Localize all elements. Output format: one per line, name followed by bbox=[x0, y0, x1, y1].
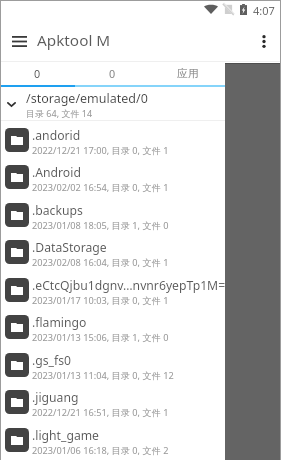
button[interactable]: Collapse folder bbox=[0, 87, 225, 121]
button[interactable]: .jiguang bbox=[0, 383, 231, 421]
staticText: 2023/01/08 18:05, 目录 1, 文件 0 bbox=[32, 219, 169, 232]
button[interactable]: .light_game bbox=[0, 421, 231, 459]
staticText: .jiguang bbox=[32, 389, 79, 406]
button[interactable]: 应用 bbox=[150, 62, 225, 87]
staticText: .light_game bbox=[32, 427, 99, 444]
staticText: 2023/01/13 11:04, 目录 0, 文件 12 bbox=[32, 369, 174, 382]
staticText: .Android bbox=[32, 164, 81, 181]
button[interactable]: .DataStorage bbox=[0, 233, 231, 271]
staticText: 2022/12/21 16:51, 目录 0, 文件 1 bbox=[32, 406, 169, 419]
staticText: Apktool M bbox=[37, 30, 111, 51]
staticText: 2023/01/17 10:03, 目录 0, 文件 1 bbox=[32, 294, 169, 307]
staticText: .andorid bbox=[32, 127, 81, 144]
staticText: 2023/01/06 16:18, 目录 0, 文件 2 bbox=[32, 444, 169, 457]
staticText: 4:07 bbox=[253, 3, 275, 18]
staticText: 2023/02/08 16:04, 目录 0, 文件 1 bbox=[32, 256, 169, 269]
button[interactable]: .flamingo bbox=[0, 308, 231, 346]
staticText: .gs_fs0 bbox=[32, 352, 72, 369]
staticText: 2023/01/13 15:06, 目录 1, 文件 0 bbox=[32, 331, 169, 344]
staticText: 0 bbox=[109, 66, 116, 81]
other: Collapse folder bbox=[7, 97, 16, 111]
staticText: .DataStorage bbox=[32, 239, 107, 256]
staticText: .backups bbox=[32, 202, 83, 219]
button[interactable]: More options bbox=[249, 26, 279, 56]
staticText: 0 bbox=[34, 66, 41, 81]
staticText: .flamingo bbox=[32, 314, 87, 331]
staticText: 2022/12/21 17:00, 目录 0, 文件 1 bbox=[32, 144, 169, 157]
button[interactable]: .Android bbox=[0, 158, 231, 196]
staticText: /storage/emulated/0 bbox=[26, 90, 148, 107]
staticText: .eCtcQjbu1dgnv…nvnr6yepTp1M= bbox=[32, 277, 226, 294]
button[interactable]: 0 bbox=[0, 62, 75, 87]
staticText: 应用 bbox=[177, 67, 199, 81]
button[interactable]: .backups bbox=[0, 196, 231, 234]
staticText: 2023/02/02 16:54, 目录 0, 文件 1 bbox=[32, 181, 169, 194]
button[interactable]: .gs_fs0 bbox=[0, 346, 231, 384]
button[interactable]: 0 bbox=[75, 62, 150, 87]
button[interactable]: Open navigation menu bbox=[6, 28, 32, 54]
button[interactable]: .andorid bbox=[0, 121, 231, 159]
button[interactable]: .eCtcQjbu1dgnv…nvnr6yepTp1M= bbox=[0, 271, 231, 309]
staticText: 目录 64, 文件 14 bbox=[26, 107, 93, 119]
